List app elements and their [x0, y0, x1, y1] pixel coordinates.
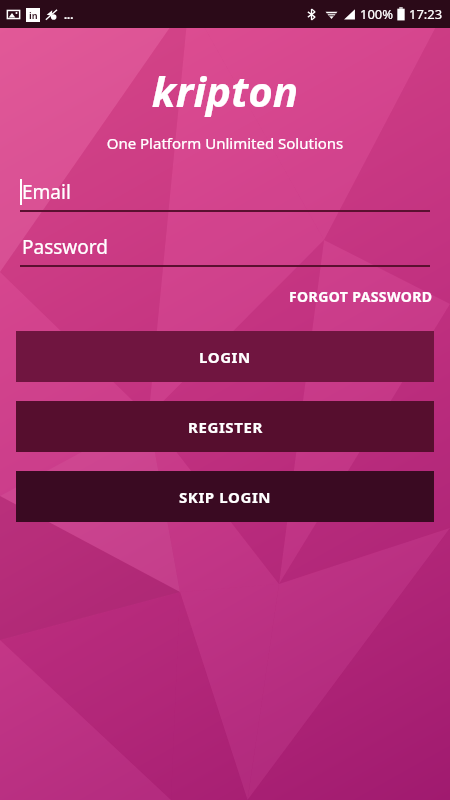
- staticText: SKIP LOGIN: [179, 487, 272, 507]
- button[interactable]: LOGIN: [16, 331, 434, 382]
- staticText: 100%: [360, 5, 394, 23]
- staticText: LOGIN: [199, 347, 251, 367]
- staticText: Email: [22, 179, 71, 205]
- button[interactable]: Password: [20, 234, 430, 267]
- staticText: kripton: [0, 62, 450, 119]
- staticText: FORGOT PASSWORD: [289, 287, 433, 306]
- button[interactable]: SKIP LOGIN: [16, 471, 434, 522]
- staticText: in: [29, 9, 38, 21]
- staticText: One Platform Unlimited Solutions: [0, 133, 450, 153]
- staticText: ...: [64, 7, 74, 22]
- staticText: REGISTER: [188, 417, 263, 437]
- button[interactable]: Email: [20, 179, 430, 212]
- button[interactable]: FORGOT PASSWORD: [287, 283, 435, 310]
- staticText: 17:23: [409, 5, 443, 23]
- staticText: Password: [22, 234, 108, 260]
- button[interactable]: REGISTER: [16, 401, 434, 452]
